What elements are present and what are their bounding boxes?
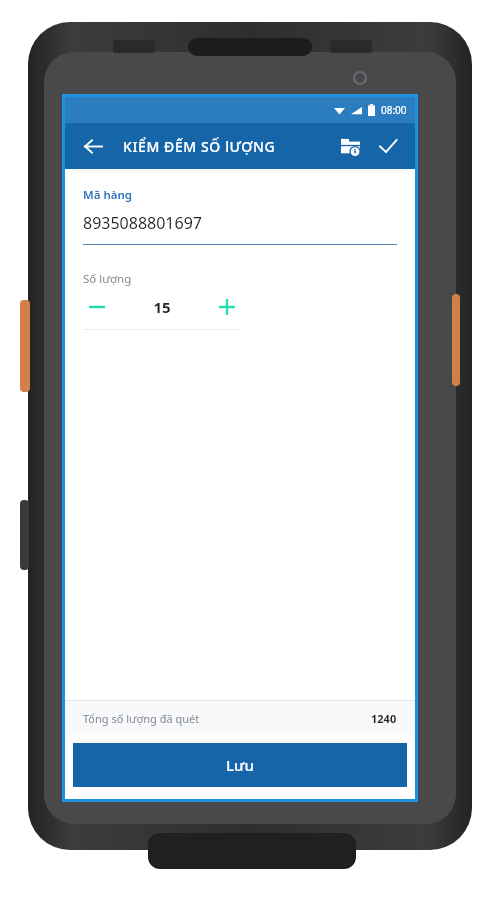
- button[interactable]: Folder info: [333, 129, 367, 163]
- staticText: 15: [153, 297, 171, 317]
- staticText: Số lượng: [83, 271, 132, 287]
- button[interactable]: Back: [77, 130, 109, 162]
- staticText: Lưu: [226, 755, 254, 775]
- button[interactable]: Increase quantity: [213, 293, 241, 321]
- staticText: 08:00: [381, 103, 407, 117]
- button[interactable]: Decrease quantity: [83, 293, 111, 321]
- button[interactable]: Confirm: [371, 129, 405, 163]
- staticText: Mã hàng: [83, 187, 133, 203]
- button[interactable]: Lưu: [73, 743, 407, 787]
- staticText: 8935088801697: [83, 212, 202, 234]
- staticText: Tổng số lượng đã quét: [83, 711, 200, 726]
- staticText: KIỂM ĐẾM SỐ lƯỢNG: [123, 137, 276, 156]
- staticText: 1240: [371, 711, 397, 726]
